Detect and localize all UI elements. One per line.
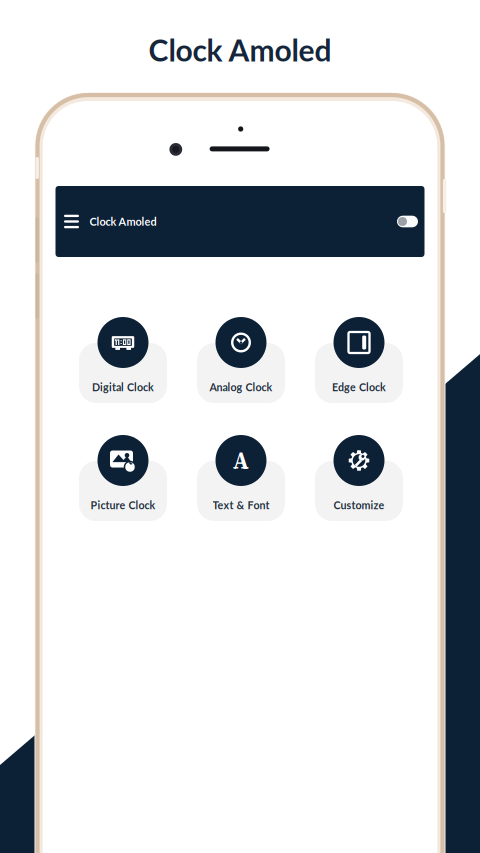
staticText: Clock Amoled [89,215,156,228]
button[interactable]: Customize [304,434,414,521]
staticText: Edge Clock [332,381,386,393]
button[interactable]: Digital Clock [68,316,178,403]
staticText: Clock Amoled [148,32,331,68]
button[interactable]: Analog Clock [186,316,296,403]
button[interactable]: Text & Font [186,434,296,521]
staticText: Analog Clock [209,381,272,393]
button[interactable]: Toggle AMOLED mode [393,210,421,232]
staticText: Digital Clock [92,381,154,393]
button[interactable]: Menu [60,210,82,232]
button[interactable]: Edge Clock [304,316,414,403]
button[interactable]: Picture Clock [68,434,178,521]
staticText: Text & Font [212,499,269,511]
staticText: Picture Clock [90,499,155,511]
staticText: A [233,445,249,476]
staticText: Customize [333,499,384,511]
